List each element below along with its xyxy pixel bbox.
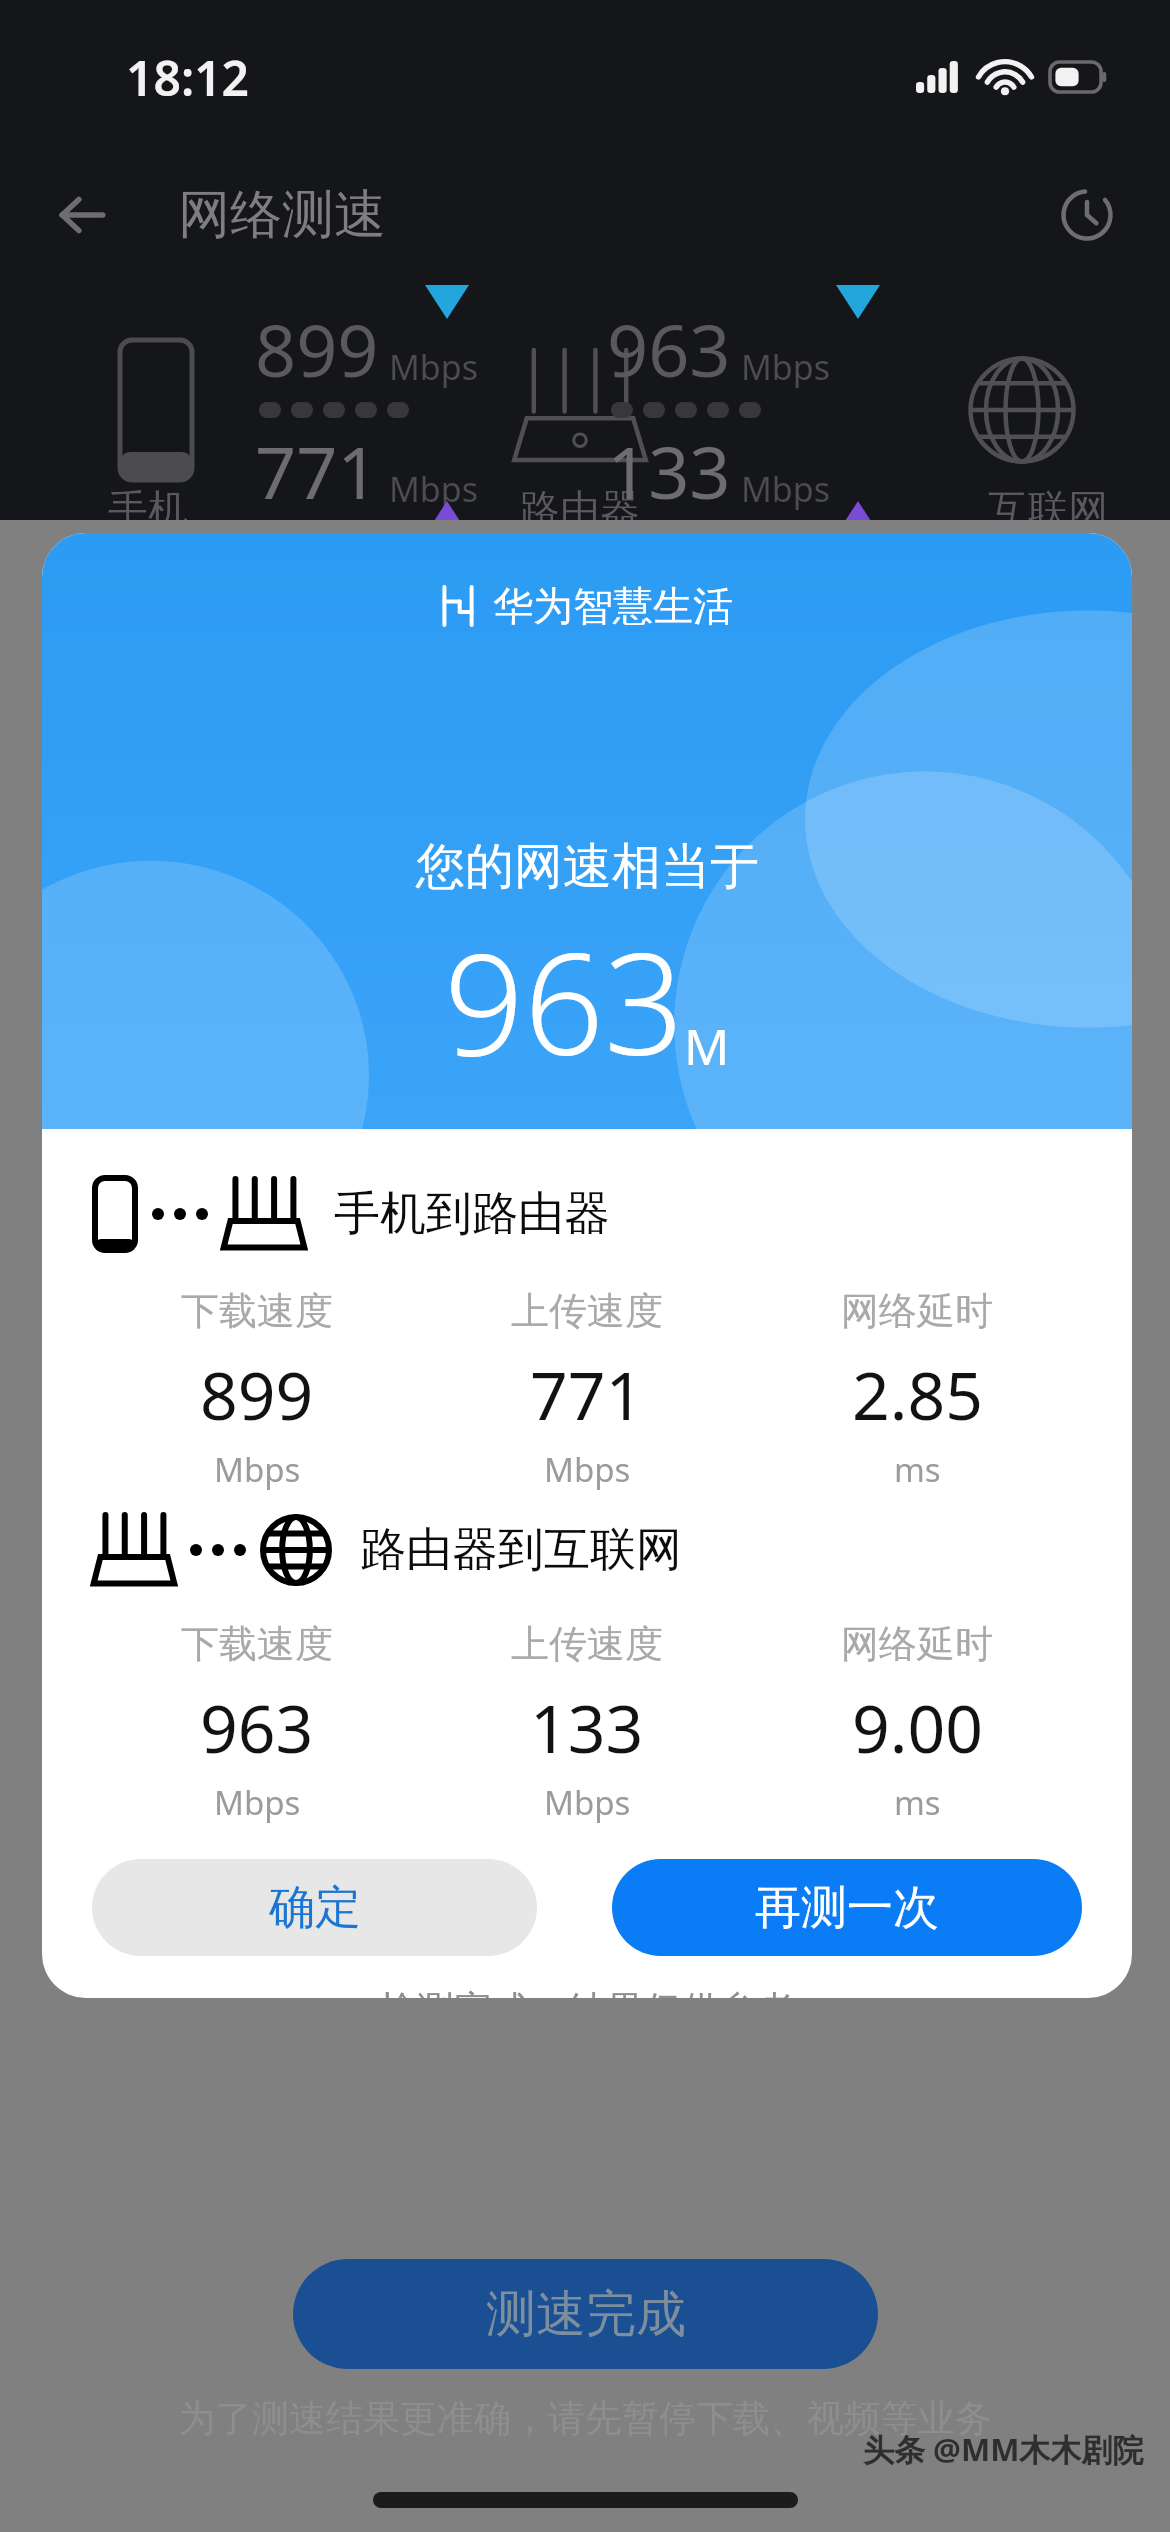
staticText: Mbps [544,1447,631,1492]
staticText: Mbps [389,344,478,390]
staticText: 899 [255,300,379,398]
staticText: 手机 [108,484,188,534]
staticText: 再测一次 [755,1879,939,1937]
staticText: 确定 [269,1879,361,1937]
staticText: 133 [530,1682,644,1772]
staticText: 963 [200,1682,314,1772]
button[interactable]: 返回 [42,174,124,256]
staticText: 路由器到互联网 [360,1521,682,1579]
staticText: 771 [530,1349,644,1439]
staticText: 下载速度 [181,1287,333,1335]
staticText: Mbps [389,466,478,512]
staticText: 为了测速结果更准确，请先暂停下载、视频等业务 [178,2395,992,2442]
staticText: 互联网 [988,484,1108,534]
staticText: 网络延时 [841,1287,993,1335]
staticText: 下载速度 [181,1620,333,1668]
staticText: 963 [607,300,731,398]
staticText: 上传速度 [511,1287,663,1335]
staticText: ms [894,1447,941,1492]
staticText: Mbps [214,1447,301,1492]
staticText: 检测完成，结果仅供参考 [92,1986,1082,1998]
staticText: 133 [607,422,731,520]
staticText: 华为智慧生活 [493,581,733,631]
staticText: 上传速度 [511,1620,663,1668]
button[interactable]: 历史记录 [1046,174,1128,256]
staticText: 网络延时 [841,1620,993,1668]
staticText: 网络测速 [178,182,386,248]
staticText: 18:12 [126,45,250,110]
staticText: Mbps [214,1780,301,1825]
staticText: M [684,1012,730,1080]
staticText: 您的网速相当于 [416,836,759,898]
button[interactable]: 确定 [92,1859,537,1956]
staticText: Mbps [741,344,830,390]
staticText: Mbps [741,466,830,512]
staticText: 测速完成 [486,2283,686,2346]
staticText: 899 [200,1349,314,1439]
staticText: ms [894,1780,941,1825]
button[interactable]: 测速完成 [293,2259,878,2369]
staticText: 手机到路由器 [334,1185,610,1243]
staticText: 963 [444,905,684,1096]
staticText: 头条 @MM木木剧院 [863,2428,1144,2470]
staticText: 路由器 [520,484,640,534]
button[interactable]: 再测一次 [612,1859,1082,1956]
staticText: 2.85 [852,1349,983,1439]
staticText: 771 [255,422,379,520]
staticText: 9.00 [852,1682,983,1772]
staticText: Mbps [544,1780,631,1825]
